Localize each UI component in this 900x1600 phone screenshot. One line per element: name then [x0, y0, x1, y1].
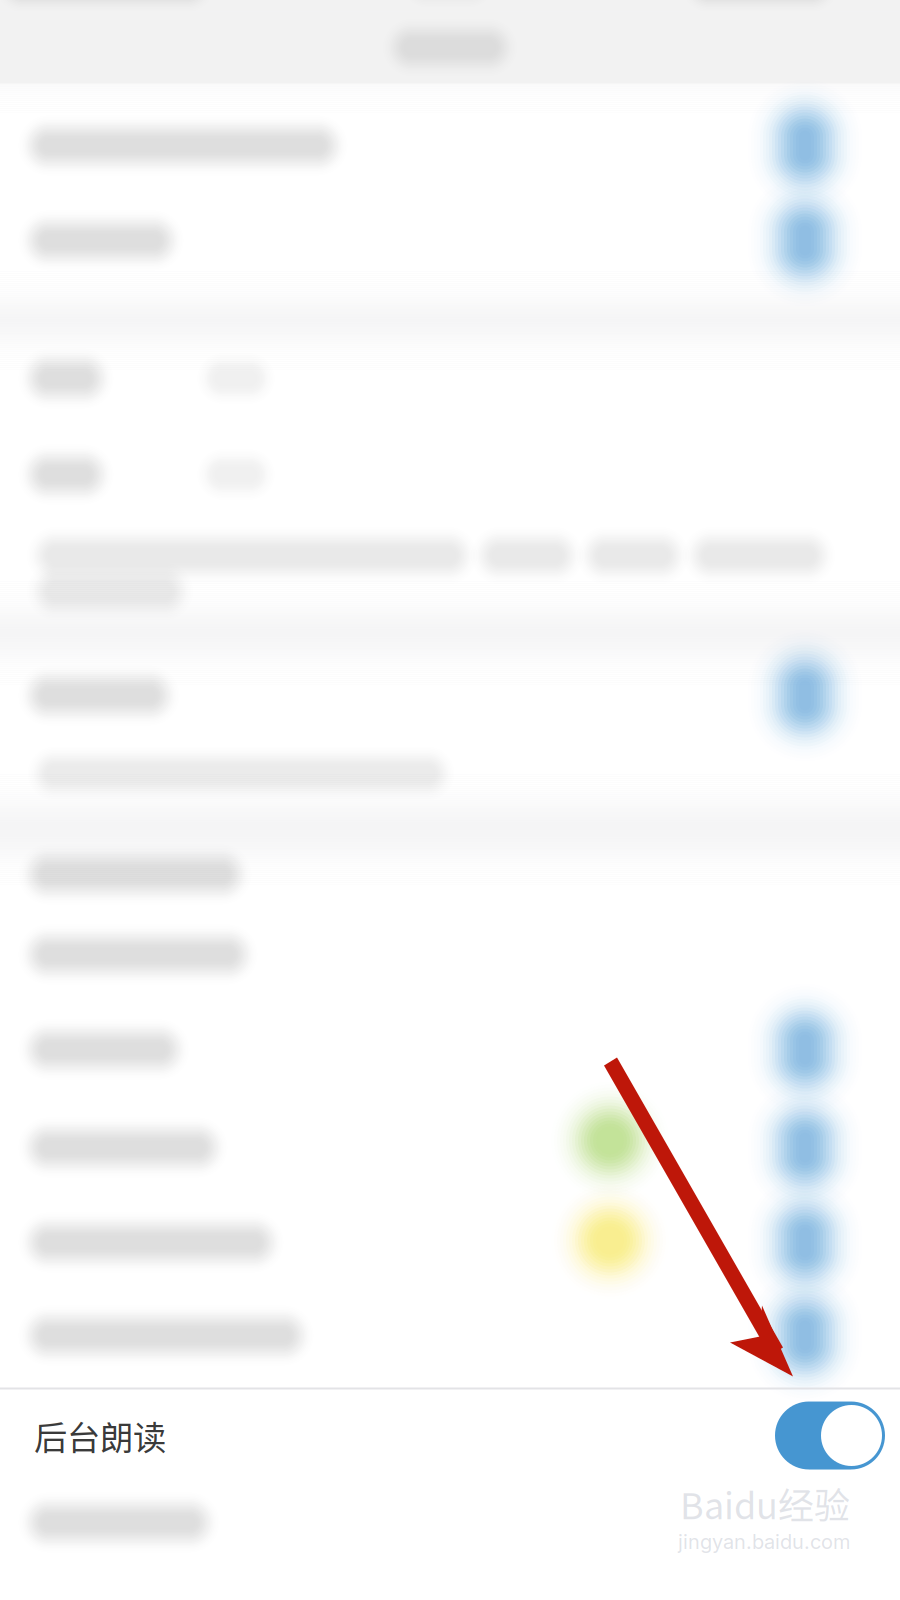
button[interactable]: 后台朗读 — [0, 1389, 900, 1481]
staticText: jingyan.baidu.com — [678, 1530, 850, 1554]
button[interactable] — [0, 0, 900, 1555]
button[interactable] — [0, 0, 900, 1555]
button[interactable] — [0, 0, 900, 1555]
staticText: 后台朗读 — [34, 1411, 166, 1460]
button[interactable] — [0, 0, 900, 1555]
button[interactable] — [0, 0, 900, 1555]
button[interactable] — [0, 0, 900, 1555]
button[interactable] — [0, 0, 900, 1555]
button[interactable] — [0, 0, 900, 1566]
button[interactable] — [0, 0, 900, 1555]
button[interactable] — [0, 0, 900, 1555]
button[interactable] — [0, 0, 900, 1555]
staticText: Baidu经验 — [680, 1477, 850, 1530]
button[interactable] — [0, 0, 900, 1555]
